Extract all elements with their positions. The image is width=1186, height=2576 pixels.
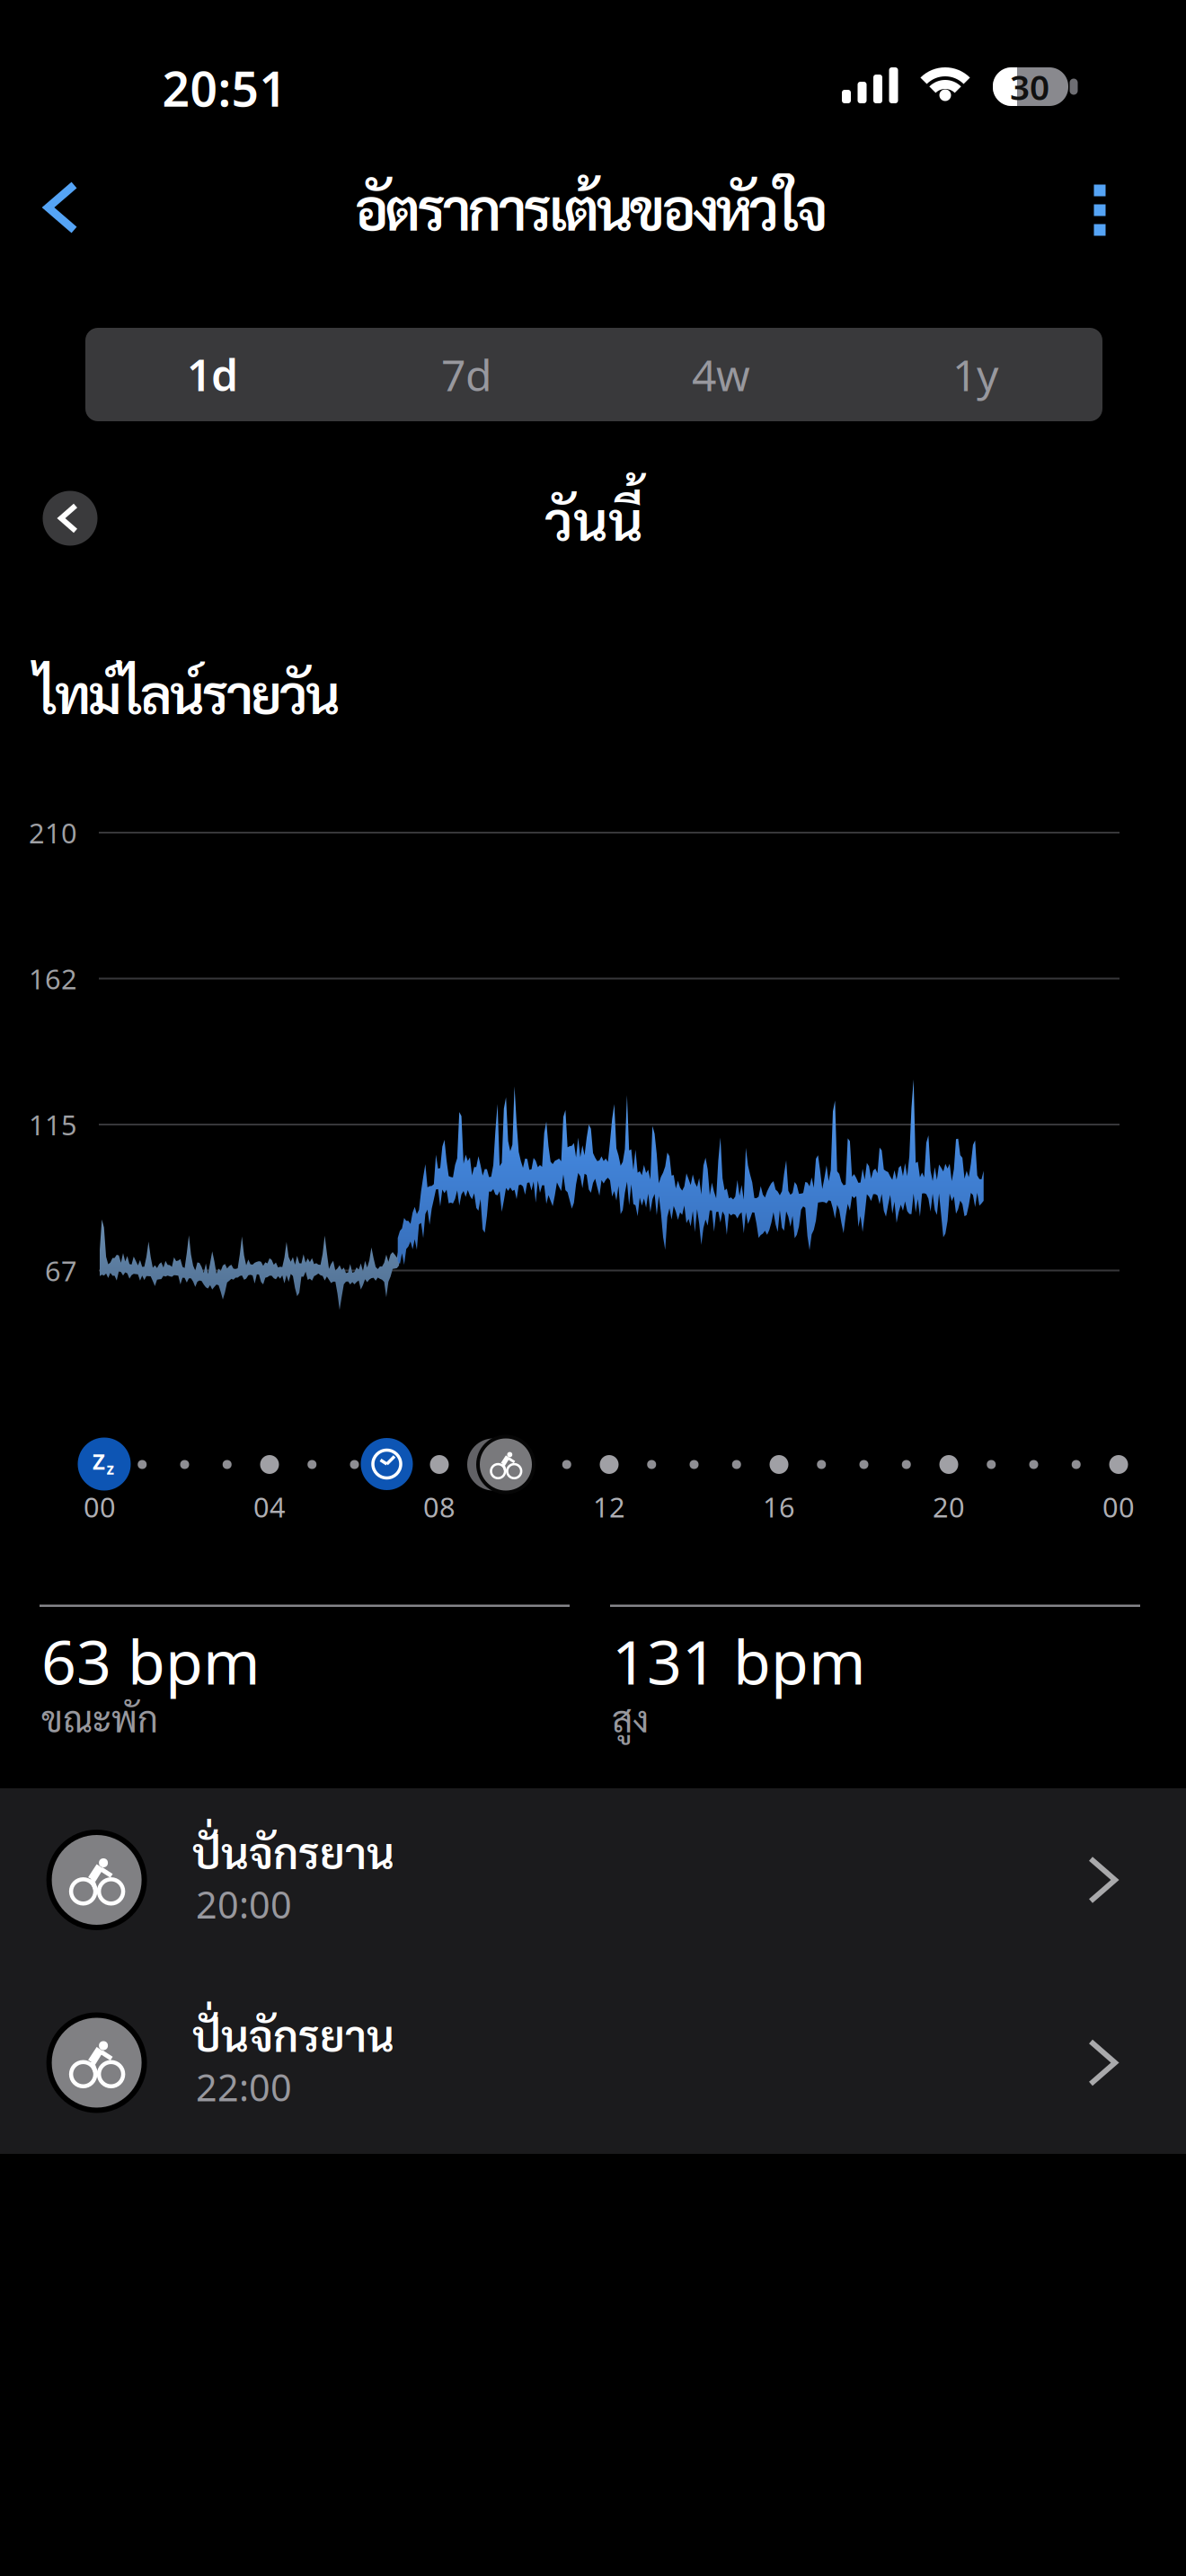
staticText: 4w bbox=[692, 346, 750, 403]
staticText: 20:00 bbox=[196, 1880, 292, 1929]
staticText: 12 bbox=[593, 1488, 625, 1525]
staticText: 00 bbox=[1102, 1488, 1135, 1525]
button[interactable]: 1d bbox=[85, 328, 340, 421]
staticText: ปั่นจักรยาน bbox=[192, 2006, 394, 2062]
staticText: 04 bbox=[253, 1488, 286, 1525]
button[interactable]: 1y bbox=[848, 328, 1102, 421]
staticText: สูง bbox=[612, 1694, 649, 1741]
staticText: ขณะพัก bbox=[41, 1694, 158, 1741]
button[interactable]: ปั่นจักรยาน bbox=[0, 1971, 1186, 2154]
staticText: 20:51 bbox=[162, 56, 287, 120]
button[interactable]: Cycling activity bbox=[476, 1435, 535, 1494]
button[interactable]: Sleep bbox=[78, 1438, 131, 1491]
staticText: 131 bpm bbox=[612, 1620, 866, 1701]
staticText: 1d bbox=[187, 346, 238, 403]
staticText: วันนี้ bbox=[544, 483, 643, 553]
staticText: 16 bbox=[763, 1488, 795, 1525]
staticText: 20 bbox=[933, 1488, 965, 1525]
staticText: อัตราการเต้นของหัวใจ bbox=[354, 169, 828, 244]
button[interactable]: Previous day bbox=[43, 491, 97, 546]
button[interactable]: ปั่นจักรยาน bbox=[0, 1788, 1186, 1972]
button[interactable]: 7d bbox=[340, 328, 594, 421]
staticText: ปั่นจักรยาน bbox=[192, 1823, 394, 1879]
staticText: z bbox=[106, 1458, 115, 1479]
staticText: 115 bbox=[29, 1106, 77, 1143]
staticText: 210 bbox=[29, 814, 77, 851]
staticText: 30 bbox=[1010, 64, 1049, 110]
staticText: ไทม์ไลน์รายวัน bbox=[34, 657, 341, 727]
button[interactable]: More options bbox=[1094, 185, 1106, 236]
button[interactable]: 4w bbox=[594, 328, 848, 421]
staticText: 162 bbox=[29, 960, 77, 997]
staticText: 67 bbox=[45, 1252, 77, 1289]
button[interactable]: Back bbox=[48, 185, 74, 230]
staticText: 08 bbox=[423, 1488, 456, 1525]
staticText: 63 bpm bbox=[41, 1620, 261, 1701]
staticText: Z bbox=[93, 1447, 105, 1476]
staticText: 22:00 bbox=[196, 2062, 292, 2112]
button[interactable]: Wake time bbox=[361, 1438, 413, 1490]
staticText: 00 bbox=[84, 1488, 116, 1525]
staticText: 7d bbox=[441, 346, 492, 403]
staticText: 1y bbox=[952, 346, 998, 403]
